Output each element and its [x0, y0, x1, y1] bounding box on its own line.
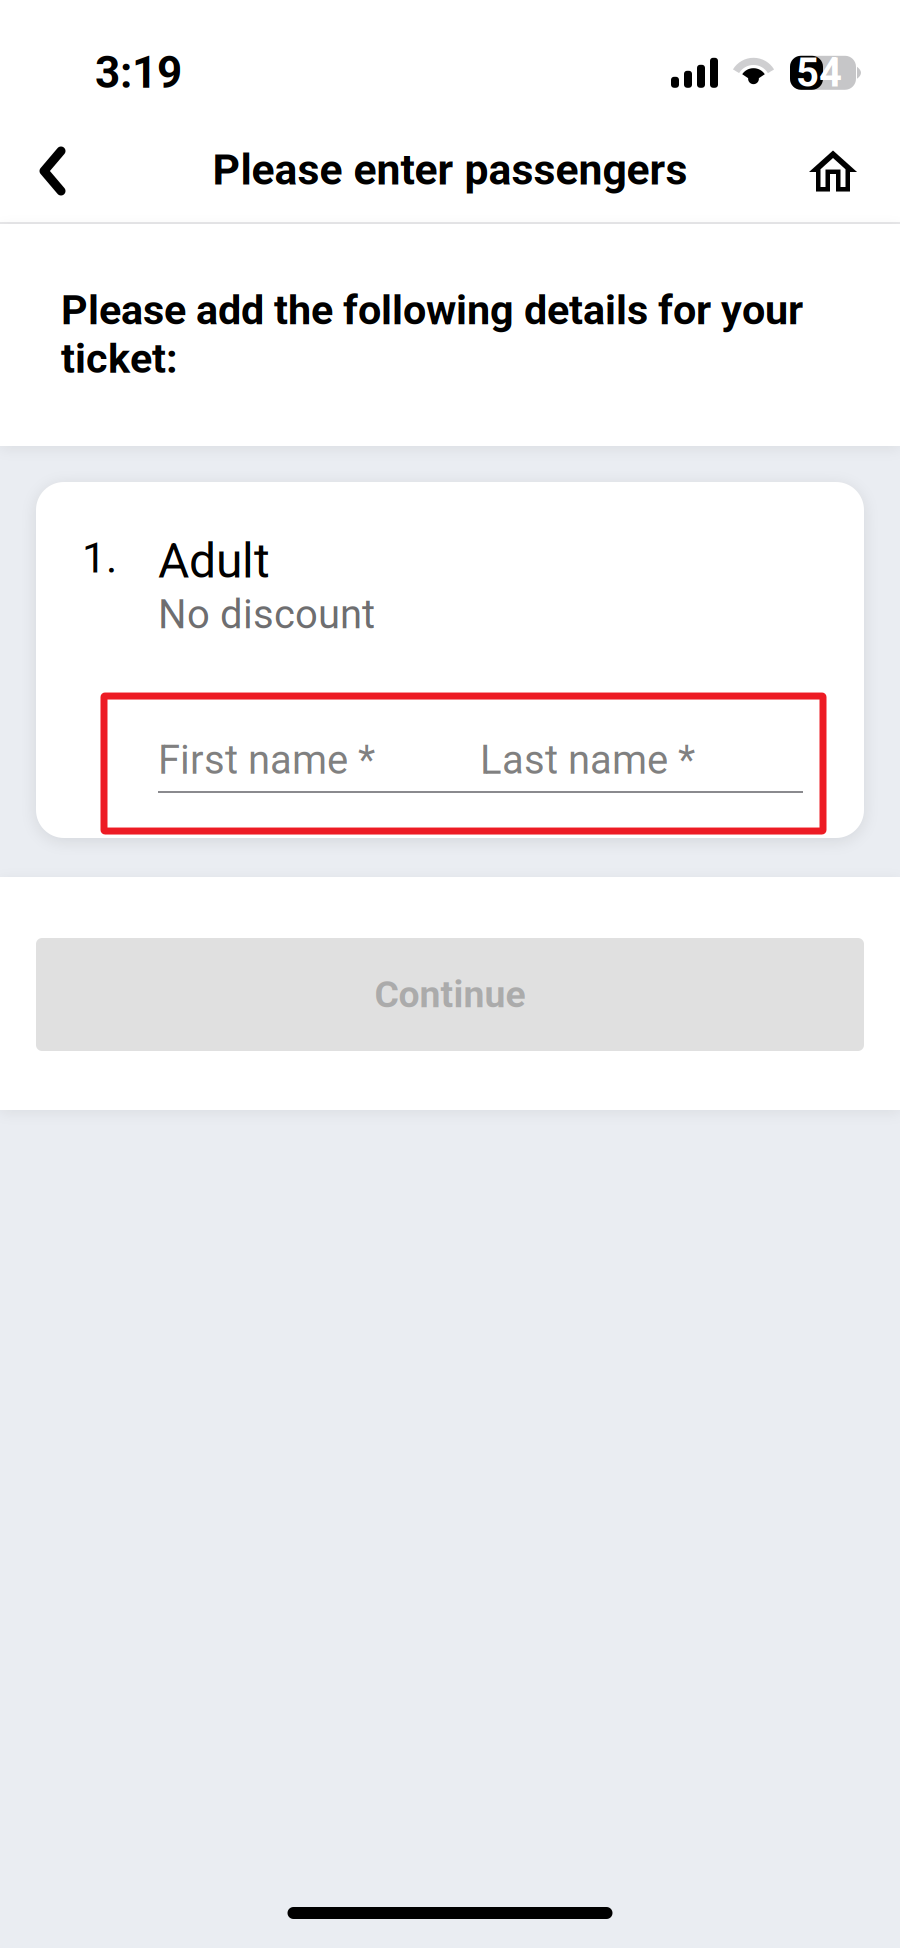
staticText: 54: [796, 49, 842, 96]
staticText: 3:19: [95, 47, 182, 99]
staticText: Please enter passengers: [212, 145, 687, 195]
button[interactable]: Back: [5, 116, 101, 226]
staticText: Continue: [374, 973, 525, 1016]
button[interactable]: Home: [785, 116, 881, 226]
staticText: 1.: [82, 533, 117, 583]
staticText: Adult: [158, 533, 270, 589]
button[interactable]: First name *: [158, 740, 480, 780]
staticText: First name *: [158, 737, 375, 783]
staticText: Last name *: [480, 737, 695, 783]
staticText: No discount: [158, 591, 375, 638]
staticText: Please add the following details for you…: [61, 286, 803, 383]
button[interactable]: Continue: [36, 938, 864, 1051]
button[interactable]: Last name *: [480, 740, 803, 780]
